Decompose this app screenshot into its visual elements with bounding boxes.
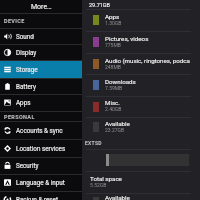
staticText: More… xyxy=(31,3,52,11)
button[interactable]: Available xyxy=(82,117,200,137)
button[interactable]: Battery xyxy=(0,78,82,95)
button[interactable]: Audio (music, ringtones, podca xyxy=(82,53,200,75)
button[interactable]: Misc. xyxy=(82,96,200,117)
button[interactable]: Available xyxy=(82,193,200,200)
staticText: Storage xyxy=(16,66,38,73)
staticText: Location services xyxy=(16,145,66,152)
staticText: EXTSD xyxy=(85,140,102,146)
staticText: 2.40GB xyxy=(105,106,122,112)
staticText: Accounts & sync xyxy=(16,127,63,134)
staticText: Apps xyxy=(105,13,120,20)
button[interactable]: More… xyxy=(0,0,82,13)
staticText: Audio (music, ringtones, podca xyxy=(105,57,190,64)
button[interactable]: Language & input xyxy=(0,174,82,191)
staticText: Available xyxy=(105,120,130,127)
staticText: Available xyxy=(105,194,130,200)
staticText: Language & input xyxy=(16,179,65,186)
button[interactable]: Accounts & sync xyxy=(0,121,82,139)
staticText: Total space xyxy=(90,175,122,182)
button[interactable]: Display xyxy=(0,44,82,61)
staticText: 1.30GB xyxy=(105,20,122,26)
staticText: 248MB xyxy=(105,64,121,70)
staticText: Display xyxy=(16,49,37,56)
staticText: Apps xyxy=(16,99,31,106)
staticText: Battery xyxy=(16,83,36,90)
staticText: 23.27GB xyxy=(105,127,125,133)
staticText: Downloads xyxy=(105,78,136,85)
staticText: Misc. xyxy=(105,99,120,106)
staticText: Sound xyxy=(16,33,34,40)
staticText: PERSONAL xyxy=(4,114,35,120)
button[interactable]: Storage xyxy=(0,60,82,78)
button[interactable]: Location services xyxy=(0,139,82,157)
staticText: 775MB xyxy=(105,42,121,48)
button[interactable]: Apps xyxy=(0,94,82,110)
staticText: Pictures, videos xyxy=(105,35,149,42)
staticText: DEVICE xyxy=(4,18,25,24)
staticText: 5.52GB xyxy=(90,182,107,188)
button[interactable]: Security xyxy=(0,157,82,174)
button[interactable]: Downloads xyxy=(82,74,200,96)
button[interactable]: Backup & reset xyxy=(0,191,82,200)
button[interactable]: Sound xyxy=(0,28,82,44)
button[interactable]: Pictures, videos xyxy=(82,31,200,53)
staticText: Backup & reset xyxy=(16,196,58,200)
staticText: Security xyxy=(16,162,39,169)
button[interactable]: Apps xyxy=(82,9,200,31)
staticText: 7.59MB xyxy=(105,85,123,91)
staticText: 29.71GB xyxy=(89,2,110,8)
button[interactable]: Total space xyxy=(82,171,200,193)
